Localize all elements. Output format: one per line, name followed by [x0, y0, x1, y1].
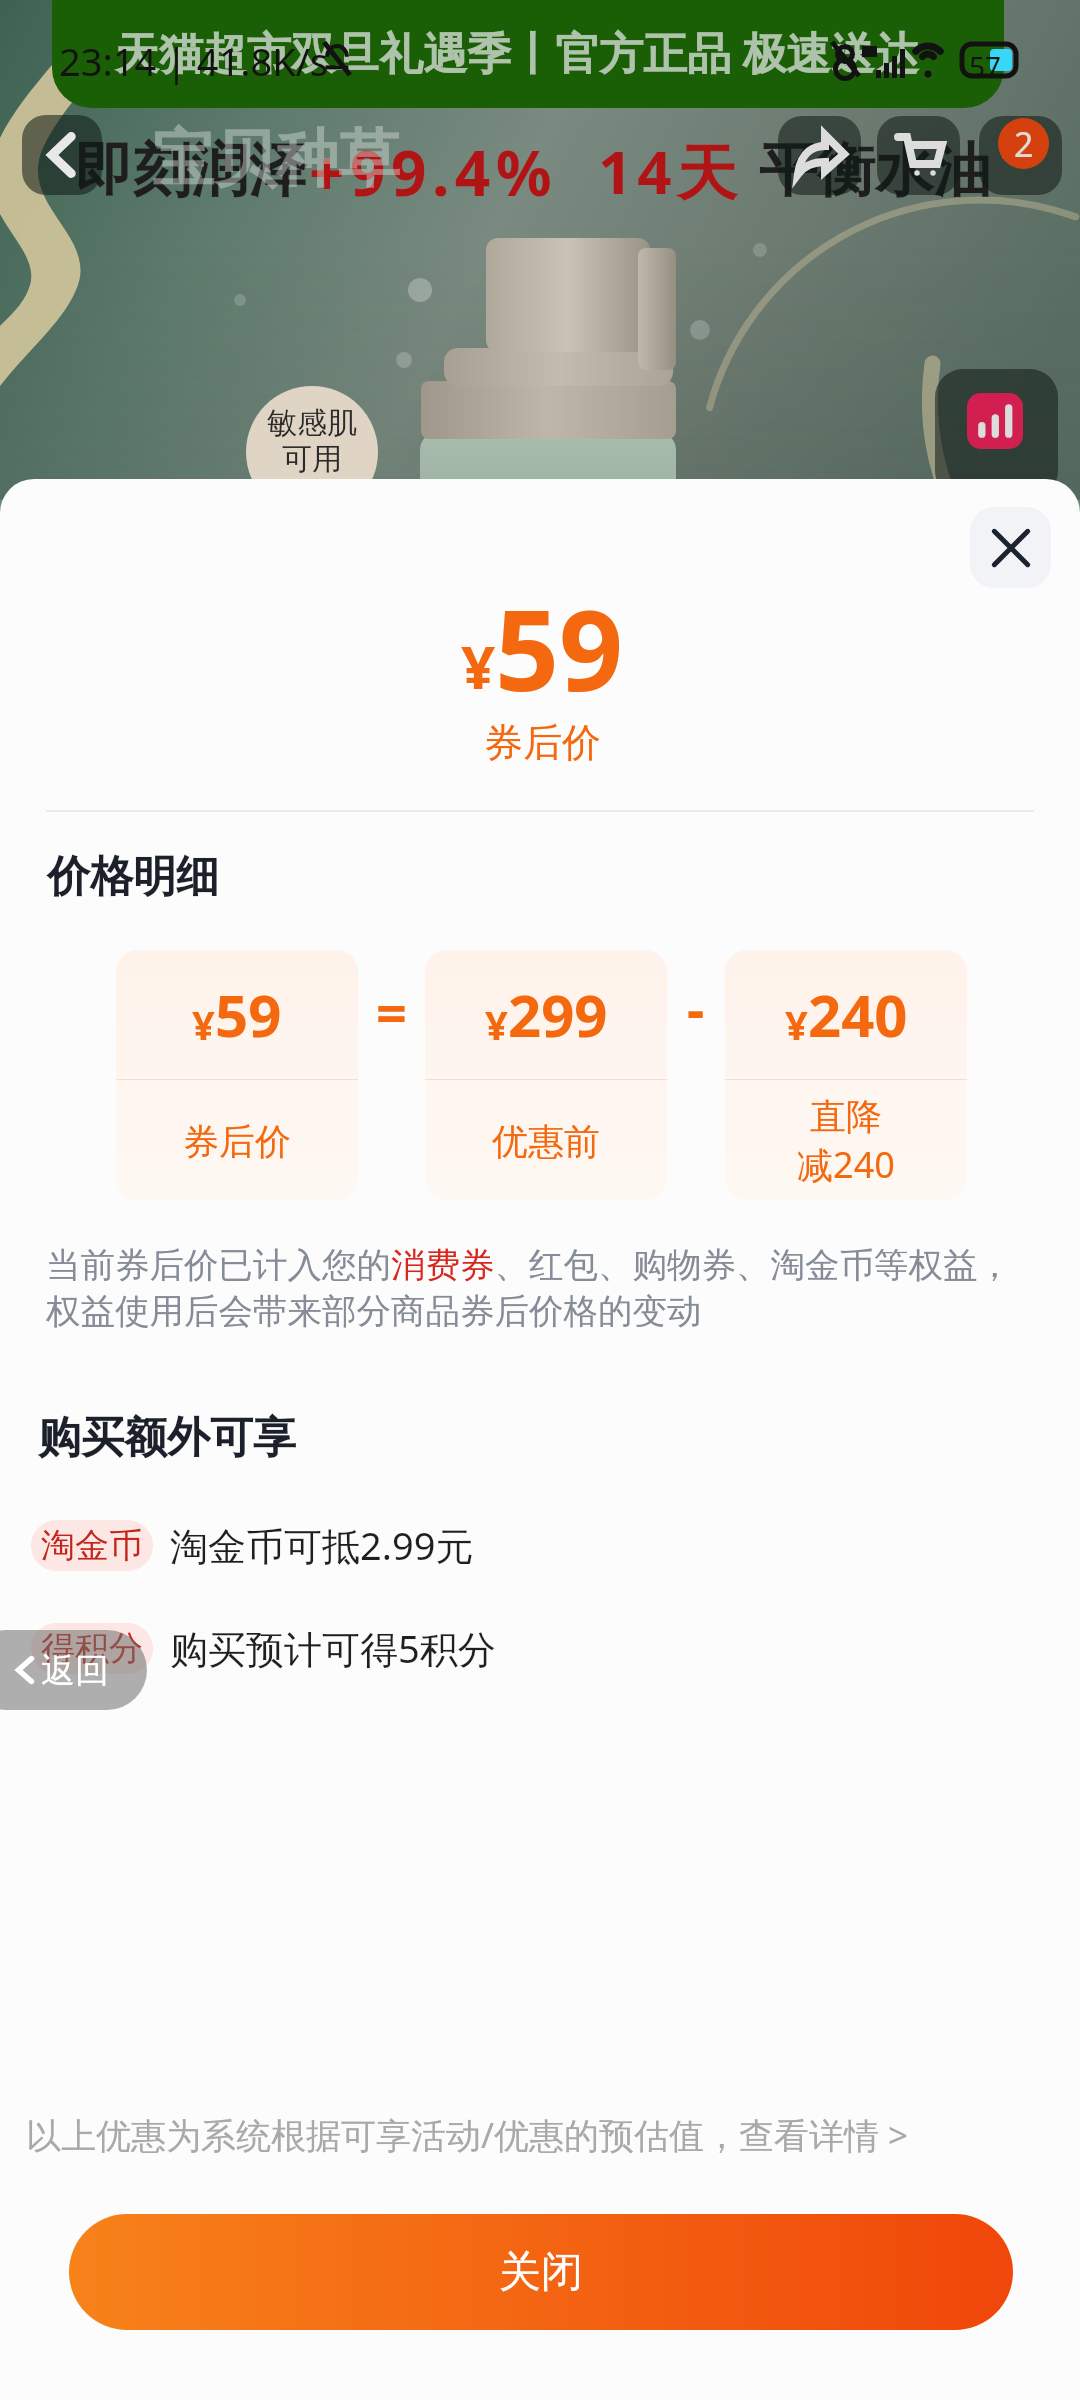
staticText: 23:14 | 41.8K/s: [59, 35, 329, 87]
staticText: 14天: [598, 130, 742, 212]
button[interactable]: 以上优惠为系统根据可享活动/优惠的预估值，查看详情 >: [26, 2111, 909, 2159]
staticText: 天猫超市双旦礼遇季丨官方正品 极速送达: [115, 22, 919, 82]
button[interactable]: ¥: [425, 950, 667, 1200]
staticText: 券后价: [183, 1119, 291, 1164]
staticText: 价格明细: [47, 850, 219, 904]
staticText: -: [687, 971, 705, 1045]
staticText: 59: [495, 571, 624, 724]
staticText: 宝贝种草: [152, 120, 400, 198]
button[interactable]: Ranking: [935, 369, 1058, 499]
button[interactable]: 返回: [0, 1630, 147, 1710]
button[interactable]: Close: [970, 507, 1051, 588]
button[interactable]: Cart: [877, 116, 960, 195]
staticText: 当前券后价已计入您的消费券、红包、购物券、淘金币等权益，权益使用后会带来部分商品…: [46, 1244, 1014, 1333]
staticText: 即刻润泽: [75, 134, 307, 207]
button[interactable]: More: [979, 116, 1062, 195]
button[interactable]: ¥: [116, 950, 358, 1200]
button[interactable]: 得积分: [0, 1622, 1080, 1674]
staticText: ¥: [485, 997, 508, 1051]
staticText: 得积分: [41, 1627, 143, 1670]
staticText: 淘金币可抵2.99元: [170, 1519, 474, 1571]
staticText: =: [376, 975, 407, 1049]
staticText: 敏感肌 可用: [262, 404, 362, 478]
staticText: ¥: [192, 997, 215, 1051]
button[interactable]: 关闭: [69, 2214, 1013, 2330]
staticText: +99.4%: [309, 130, 558, 214]
button[interactable]: 淘金币: [0, 1519, 1080, 1571]
button[interactable]: Share: [778, 116, 861, 195]
staticText: 2: [1014, 121, 1034, 167]
staticText: ¥: [461, 625, 496, 707]
staticText: 购买预计可得5积分: [170, 1622, 496, 1674]
staticText: 240: [808, 975, 908, 1054]
staticText: 59: [215, 975, 282, 1054]
staticText: 直降 减240: [797, 1094, 895, 1189]
button[interactable]: Back: [22, 115, 102, 195]
staticText: 优惠前: [492, 1119, 600, 1164]
staticText: ¥: [785, 997, 808, 1051]
staticText: 购买额外可享: [38, 1411, 296, 1465]
staticText: 关闭: [499, 2246, 583, 2299]
staticText: 57: [969, 47, 1002, 85]
staticText: 券后价: [484, 718, 601, 767]
staticText: 淘金币: [41, 1524, 143, 1567]
staticText: 平衡水油: [759, 134, 991, 207]
staticText: 返回: [41, 1649, 109, 1692]
staticText: 299: [508, 975, 608, 1054]
button[interactable]: ¥: [725, 950, 967, 1200]
